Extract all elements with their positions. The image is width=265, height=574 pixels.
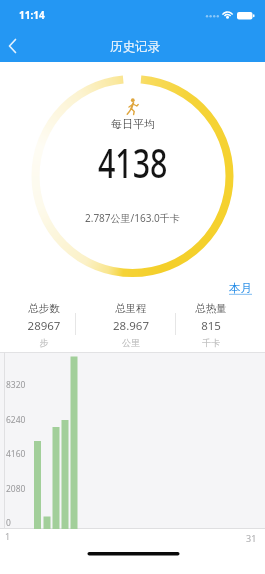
staticText: 28967 [4,318,84,334]
button[interactable] [0,28,34,62]
staticText: 总热量 [171,302,251,315]
staticText: 4138 [98,136,168,189]
staticText: 8320 [6,379,26,391]
staticText: 28.967 [91,318,171,334]
staticText: 2080 [6,483,26,495]
staticText: 4160 [6,448,26,460]
staticText: 总步数 [4,302,84,315]
staticText: 本月 [229,281,252,295]
staticText: 815 [171,318,251,334]
staticText: 公里 [91,337,171,348]
staticText: 步 [4,337,84,348]
staticText: 千卡 [171,337,251,348]
staticText: 每日平均 [111,117,155,131]
staticText: 6240 [6,414,26,426]
staticText: 历史记录 [110,39,160,55]
staticText: 2.787公里/163.0千卡 [85,211,180,225]
staticText: 11:14 [19,8,45,22]
button[interactable]: 本月 [234,278,257,292]
staticText: 1 [5,530,11,542]
staticText: 31 [246,532,257,544]
staticText: 0 [6,517,11,529]
staticText: 总里程 [91,302,171,315]
